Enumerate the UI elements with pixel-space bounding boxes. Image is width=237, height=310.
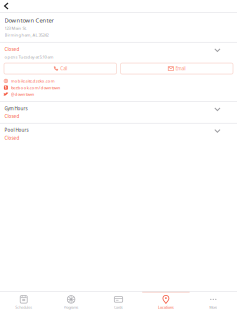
staticText: Birmingham, AL 35242 <box>5 32 49 38</box>
staticText: 123 Main St. <box>5 25 27 31</box>
staticText: @downtown <box>11 91 35 97</box>
staticText: Locations <box>158 305 174 310</box>
staticText: facebook.com/downtown <box>11 85 61 90</box>
button[interactable]: Schedules <box>0 291 47 310</box>
button[interactable]: facebook.com/downtown <box>4 85 233 90</box>
staticText: opens Tuesday at 5:10 am <box>5 54 54 60</box>
staticText: More <box>209 305 217 310</box>
staticText: Downtown Center <box>5 16 54 24</box>
staticText: Closed <box>5 113 20 119</box>
button[interactable]: Cards <box>95 291 142 310</box>
button[interactable]: Programs <box>47 291 95 310</box>
button[interactable]: Closed <box>0 43 237 63</box>
staticText: mobile-site.dzeko.com <box>11 78 55 84</box>
staticText: Cards <box>114 305 123 310</box>
staticText: Email <box>175 66 185 72</box>
button[interactable]: @downtown <box>4 91 233 97</box>
staticText: Closed <box>5 46 20 52</box>
button[interactable]: Email <box>120 63 233 74</box>
staticText: Gym Hours <box>5 105 28 112</box>
button[interactable]: Back <box>0 0 14 12</box>
staticText: Closed <box>5 135 20 141</box>
button[interactable]: Locations <box>142 291 190 310</box>
button[interactable]: Pool Hours <box>0 124 237 144</box>
button[interactable]: Call <box>4 63 116 74</box>
staticText: Call <box>60 66 67 72</box>
button[interactable]: More <box>190 291 237 310</box>
button[interactable]: mobile-site.dzeko.com <box>4 78 233 84</box>
staticText: Programs <box>64 305 79 310</box>
staticText: Pool Hours <box>5 127 29 133</box>
button[interactable]: Gym Hours <box>0 102 237 123</box>
staticText: Schedules <box>15 305 32 310</box>
